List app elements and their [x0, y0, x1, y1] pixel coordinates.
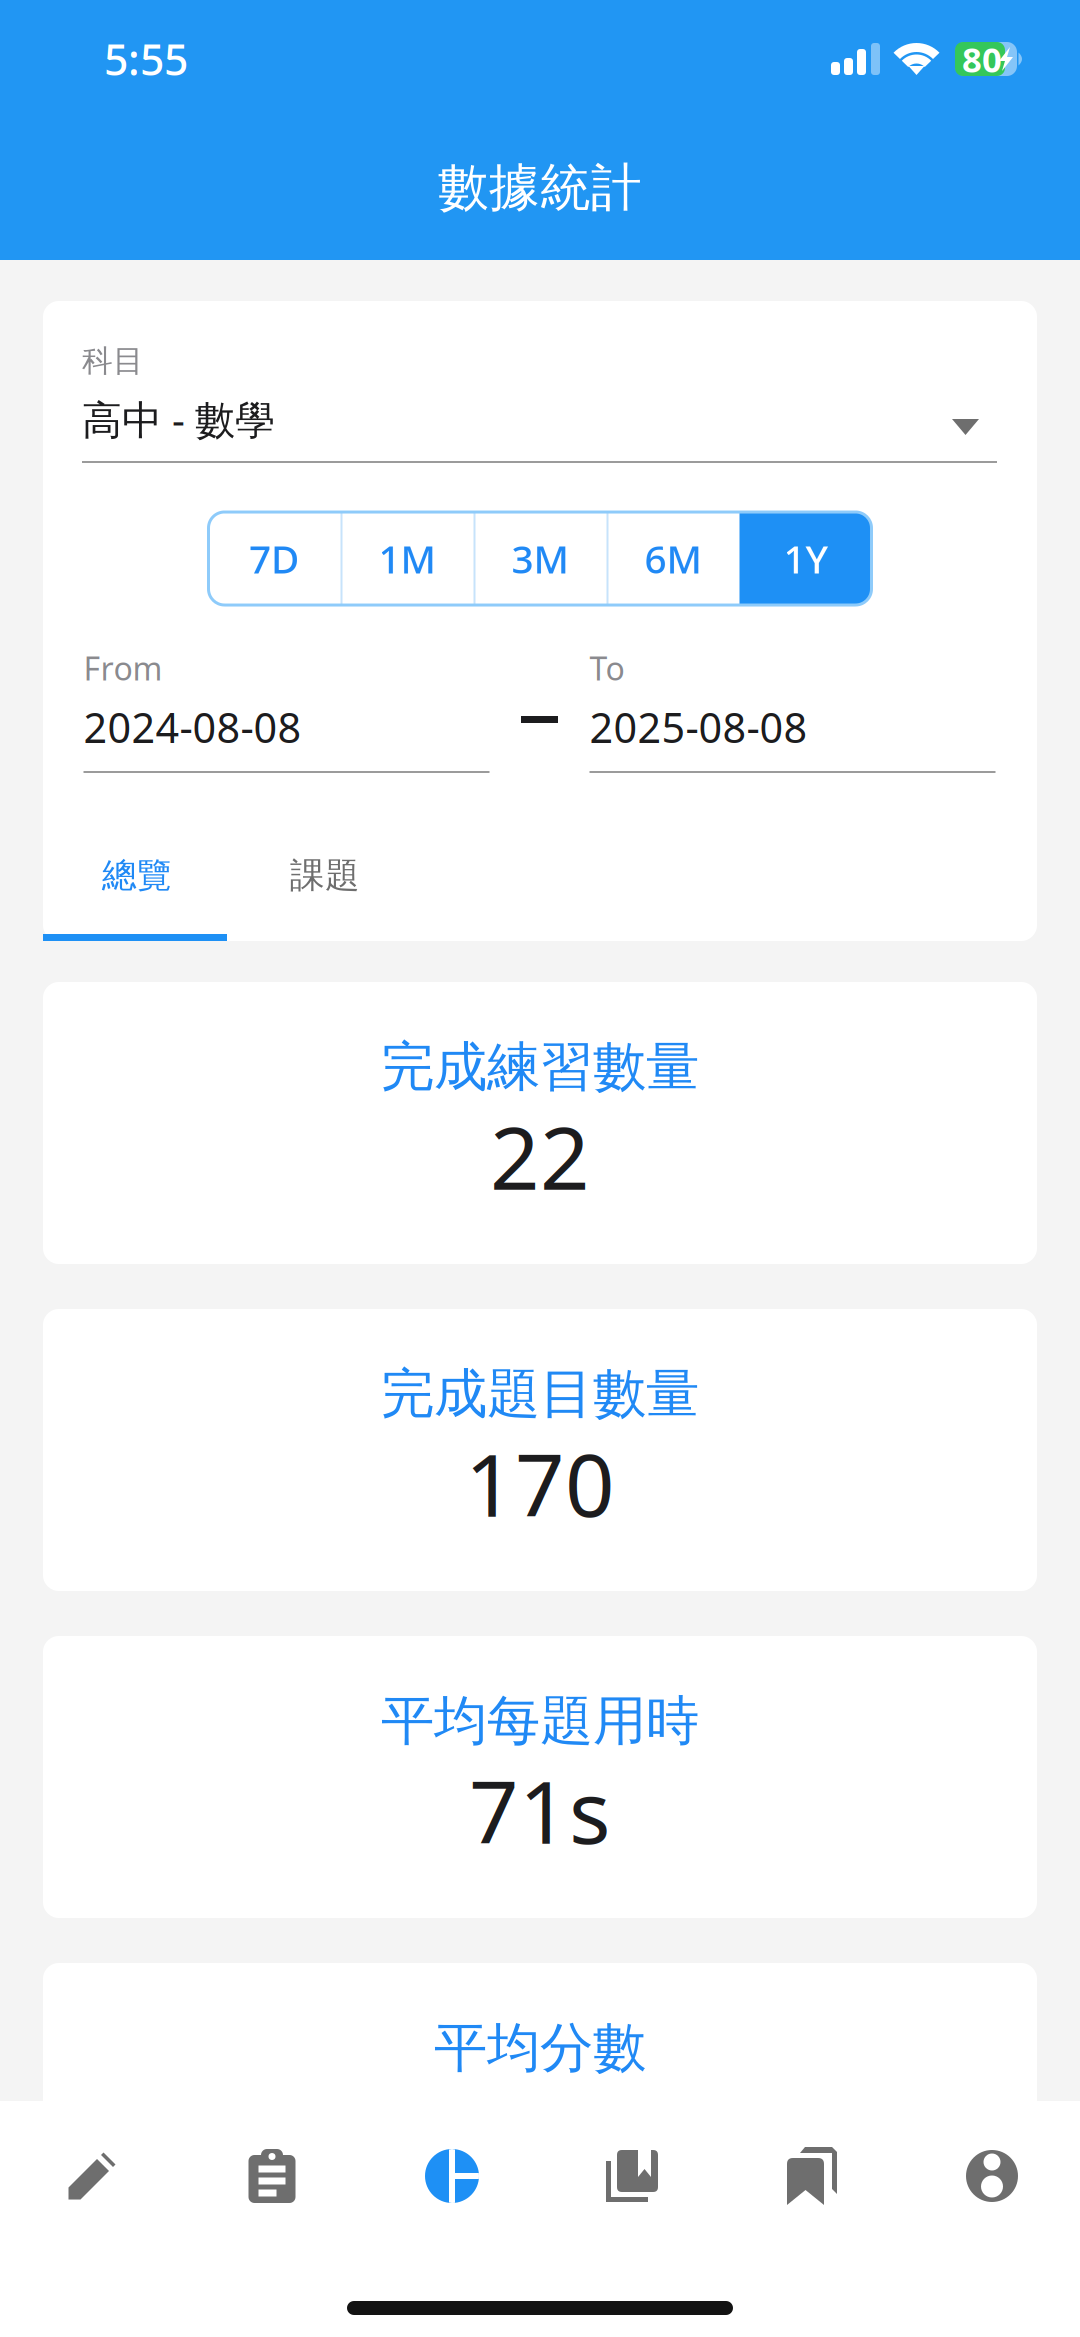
- button[interactable]: 高中 - 數學: [43, 394, 1037, 463]
- staticText: 完成練習數量: [381, 1034, 699, 1100]
- staticText: 完成題目數量: [381, 1361, 699, 1427]
- staticText: 數據統計: [438, 157, 642, 219]
- staticText: 2024-08-08: [83, 700, 301, 754]
- staticText: 80: [962, 36, 1002, 82]
- staticText: 71s: [469, 1752, 611, 1868]
- button[interactable]: 1M: [340, 511, 473, 605]
- staticText: 2025-08-08: [589, 700, 807, 754]
- staticText: 平均每題用時: [381, 1688, 699, 1754]
- staticText: 7D: [249, 533, 299, 584]
- staticText: 總覽: [102, 854, 172, 897]
- button[interactable]: 總覽: [43, 774, 231, 941]
- button[interactable]: 課題: [231, 774, 419, 941]
- staticText: 1Y: [783, 533, 828, 584]
- staticText: To: [589, 647, 624, 689]
- button[interactable]: Assignments: [182, 2131, 362, 2221]
- staticText: 22: [490, 1098, 590, 1214]
- button[interactable]: 7D: [207, 511, 340, 605]
- staticText: 1M: [378, 533, 435, 584]
- staticText: 3M: [511, 533, 568, 584]
- button[interactable]: Library: [542, 2131, 722, 2221]
- staticText: 6M: [644, 533, 701, 584]
- button[interactable]: 1Y: [739, 511, 872, 605]
- button[interactable]: Profile: [902, 2131, 1080, 2221]
- button[interactable]: 3M: [473, 511, 606, 605]
- staticText: 課題: [290, 854, 360, 897]
- staticText: 平均分數: [434, 2015, 646, 2081]
- staticText: 科目: [82, 342, 144, 380]
- button[interactable]: Bookmarks: [722, 2131, 902, 2221]
- button[interactable]: Practice: [2, 2131, 182, 2221]
- staticText: 高中 - 數學: [82, 392, 275, 445]
- staticText: From: [83, 647, 162, 689]
- button[interactable]: 6M: [606, 511, 739, 605]
- button[interactable]: Statistics: [362, 2131, 542, 2221]
- staticText: 5:55: [104, 31, 188, 87]
- staticText: 170: [465, 1425, 615, 1541]
